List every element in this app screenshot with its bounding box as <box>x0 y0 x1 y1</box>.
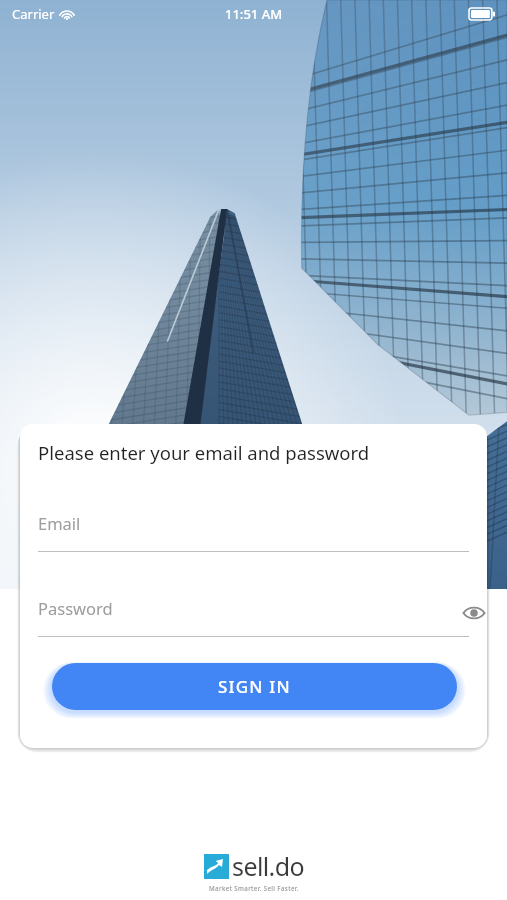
staticText: Password <box>38 597 113 619</box>
button[interactable]: Password <box>38 597 469 637</box>
staticText: 11:51 AM <box>225 5 283 23</box>
staticText: Please enter your email and password <box>38 440 370 465</box>
staticText: Market Smarter. Sell Faster. <box>209 884 299 892</box>
button[interactable]: SIGN IN <box>52 663 457 710</box>
staticText: SIGN IN <box>218 675 291 698</box>
staticText: sell.do <box>232 849 304 883</box>
staticText: Email <box>38 512 81 534</box>
staticText: Carrier <box>12 5 55 23</box>
button[interactable]: Show password <box>458 598 487 628</box>
button[interactable]: Email <box>38 512 469 552</box>
